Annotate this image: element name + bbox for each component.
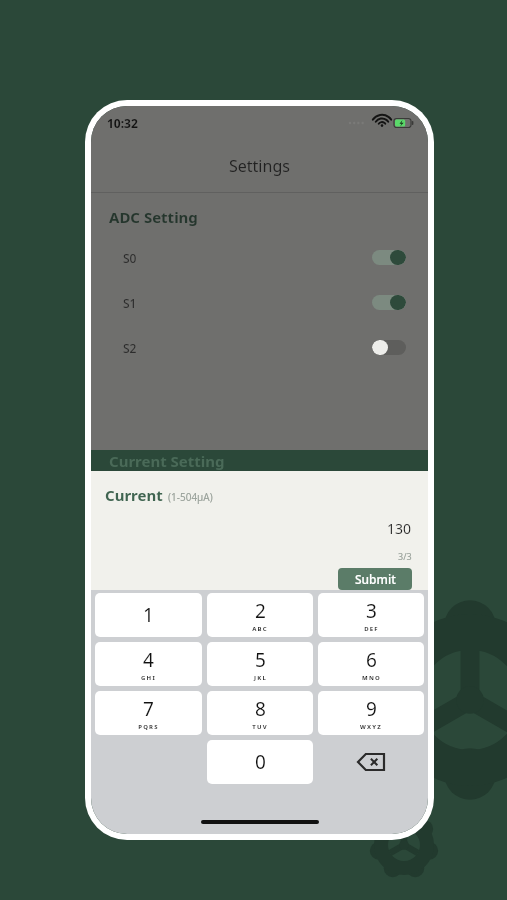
staticText: 4 bbox=[143, 647, 154, 673]
staticText: 3/3 bbox=[398, 550, 412, 562]
staticText: 5 bbox=[255, 647, 266, 673]
staticText: Submit bbox=[355, 571, 396, 587]
button[interactable]: 8 bbox=[207, 691, 313, 735]
button[interactable]: 6 bbox=[318, 642, 424, 686]
staticText: 7 bbox=[143, 696, 154, 722]
button[interactable]: S0 bbox=[91, 235, 428, 280]
staticText: 8 bbox=[255, 696, 266, 722]
button[interactable]: 3 bbox=[318, 593, 424, 637]
staticText: S1 bbox=[123, 295, 137, 311]
button[interactable]: Toggle S2 bbox=[372, 340, 406, 355]
staticText: Current Setting bbox=[109, 451, 225, 471]
staticText: 6 bbox=[366, 647, 377, 673]
button[interactable]: S2 bbox=[91, 325, 428, 370]
button[interactable]: Toggle S1 bbox=[372, 295, 406, 310]
staticText: GHI bbox=[141, 674, 156, 682]
staticText: 3 bbox=[366, 598, 377, 624]
button[interactable]: S1 bbox=[91, 280, 428, 325]
staticText: 2 bbox=[255, 598, 266, 624]
staticText: DEF bbox=[364, 625, 379, 633]
button[interactable]: 9 bbox=[318, 691, 424, 735]
staticText: WXYZ bbox=[360, 723, 382, 731]
button[interactable]: 1 bbox=[95, 593, 202, 637]
staticText: 130 bbox=[387, 519, 412, 538]
staticText: JKL bbox=[254, 674, 267, 682]
button[interactable]: 5 bbox=[207, 642, 313, 686]
staticText: 1 bbox=[143, 602, 154, 628]
staticText: 9 bbox=[366, 696, 377, 722]
button[interactable]: 0 bbox=[207, 740, 313, 784]
staticText: ADC Setting bbox=[109, 207, 198, 227]
staticText: PQRS bbox=[138, 723, 159, 731]
button[interactable]: 2 bbox=[207, 593, 313, 637]
button[interactable]: 7 bbox=[95, 691, 202, 735]
staticText: Settings bbox=[229, 155, 290, 177]
button[interactable]: Submit bbox=[338, 568, 412, 590]
staticText: 10:32 bbox=[107, 115, 138, 131]
staticText: S2 bbox=[123, 340, 137, 356]
staticText: (1-504µA) bbox=[168, 490, 213, 504]
staticText: S0 bbox=[123, 250, 137, 266]
button[interactable]: Toggle S0 bbox=[372, 250, 406, 265]
staticText: 0 bbox=[255, 749, 266, 775]
button[interactable]: 4 bbox=[95, 642, 202, 686]
staticText: MNO bbox=[362, 674, 381, 682]
button[interactable]: Backspace bbox=[318, 740, 424, 784]
staticText: ABC bbox=[252, 625, 268, 633]
staticText: TUV bbox=[252, 723, 268, 731]
staticText: Current bbox=[105, 485, 163, 505]
